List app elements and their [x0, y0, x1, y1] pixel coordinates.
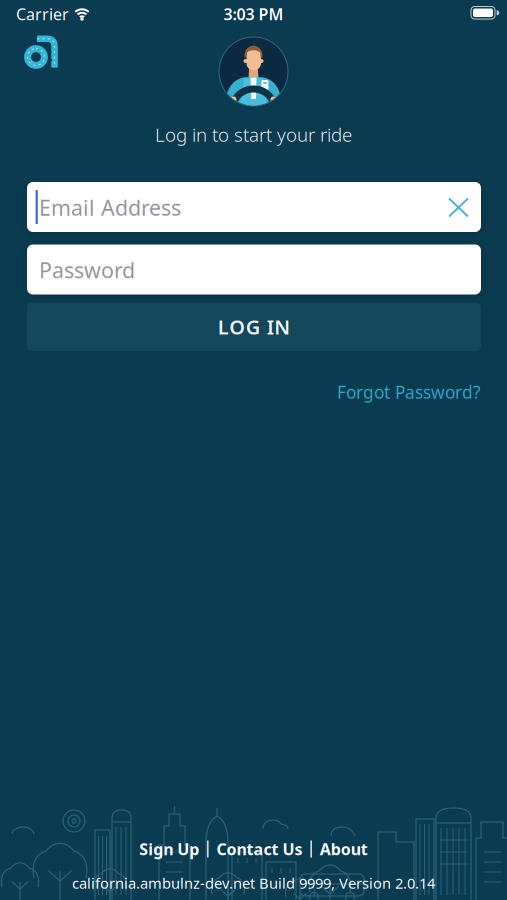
staticText: Carrier [16, 3, 69, 25]
staticText: Sign Up [139, 838, 199, 860]
button[interactable]: About [320, 838, 368, 860]
staticText: california.ambulnz-dev.net Build 9999, V… [72, 873, 435, 893]
button[interactable]: Contact Us [216, 838, 302, 860]
staticText: Password [39, 256, 135, 284]
staticText: Contact Us [216, 838, 302, 860]
button[interactable]: Sign Up [139, 838, 199, 860]
button[interactable]: Forgot Password? [261, 380, 481, 403]
staticText: 3:03 PM [223, 3, 283, 25]
staticText: About [320, 838, 368, 860]
button[interactable]: Clear text [448, 198, 468, 217]
staticText: Log in to start your ride [155, 122, 352, 147]
staticText: Email Address [39, 193, 181, 222]
staticText: Forgot Password? [337, 380, 481, 403]
staticText: LOG IN [218, 313, 290, 340]
button[interactable]: LOG IN [27, 302, 481, 351]
